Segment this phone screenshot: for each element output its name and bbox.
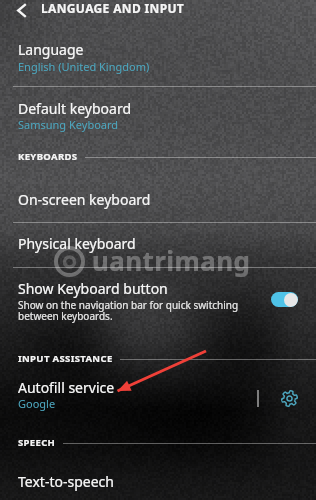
staticText: English (United Kingdom) xyxy=(18,59,150,74)
staticText: Physical keyboard xyxy=(18,234,136,253)
staticText: between keyboards. xyxy=(18,309,113,323)
staticText: Show on the navigation bar for quick swi… xyxy=(18,298,239,312)
staticText: Text-to-speech xyxy=(18,472,114,491)
button[interactable]: Autofill service settings xyxy=(271,376,307,420)
staticText: Default keyboard xyxy=(18,99,132,118)
button[interactable] xyxy=(0,178,316,222)
staticText: Autofill service xyxy=(18,378,115,397)
button[interactable]: Back xyxy=(6,0,37,20)
button[interactable] xyxy=(0,22,316,86)
staticText: INPUT ASSISTANCE xyxy=(18,352,113,365)
button[interactable] xyxy=(0,368,250,412)
button[interactable]: Show Keyboard button toggle xyxy=(271,292,298,307)
staticText: On-screen keyboard xyxy=(18,190,151,209)
staticText: uantrimang xyxy=(92,243,251,278)
staticText: Language xyxy=(18,40,84,59)
staticText: SPEECH xyxy=(18,436,56,449)
staticText: Show Keyboard button xyxy=(18,279,168,298)
staticText: LANGUAGE AND INPUT xyxy=(41,0,185,16)
button[interactable] xyxy=(0,222,316,267)
button[interactable] xyxy=(0,460,316,500)
staticText: KEYBOARDS xyxy=(18,150,78,163)
button[interactable] xyxy=(0,87,316,132)
button[interactable] xyxy=(0,267,316,327)
staticText: Google xyxy=(18,396,56,411)
staticText: Samsung Keyboard xyxy=(18,117,119,132)
